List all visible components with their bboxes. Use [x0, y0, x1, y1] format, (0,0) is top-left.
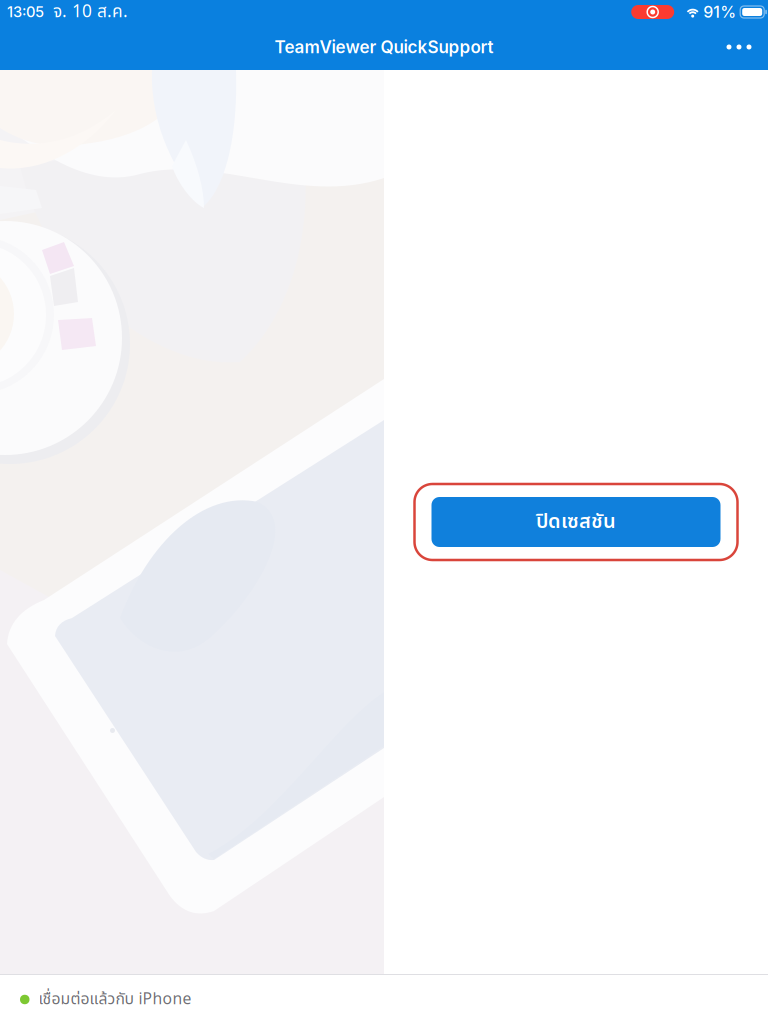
staticText: 91% [703, 2, 736, 22]
button[interactable]: More options [710, 24, 768, 70]
staticText: ปิดเซสชัน [536, 507, 616, 537]
button[interactable]: ปิดเซสชัน [414, 484, 737, 560]
staticText: 13:05 [7, 3, 44, 21]
staticText: เชื่อมต่อแล้วกับ iPhone [38, 988, 191, 1011]
staticText: TeamViewer QuickSupport [274, 37, 493, 57]
staticText: จ. 10 ส.ค. [53, 0, 128, 25]
